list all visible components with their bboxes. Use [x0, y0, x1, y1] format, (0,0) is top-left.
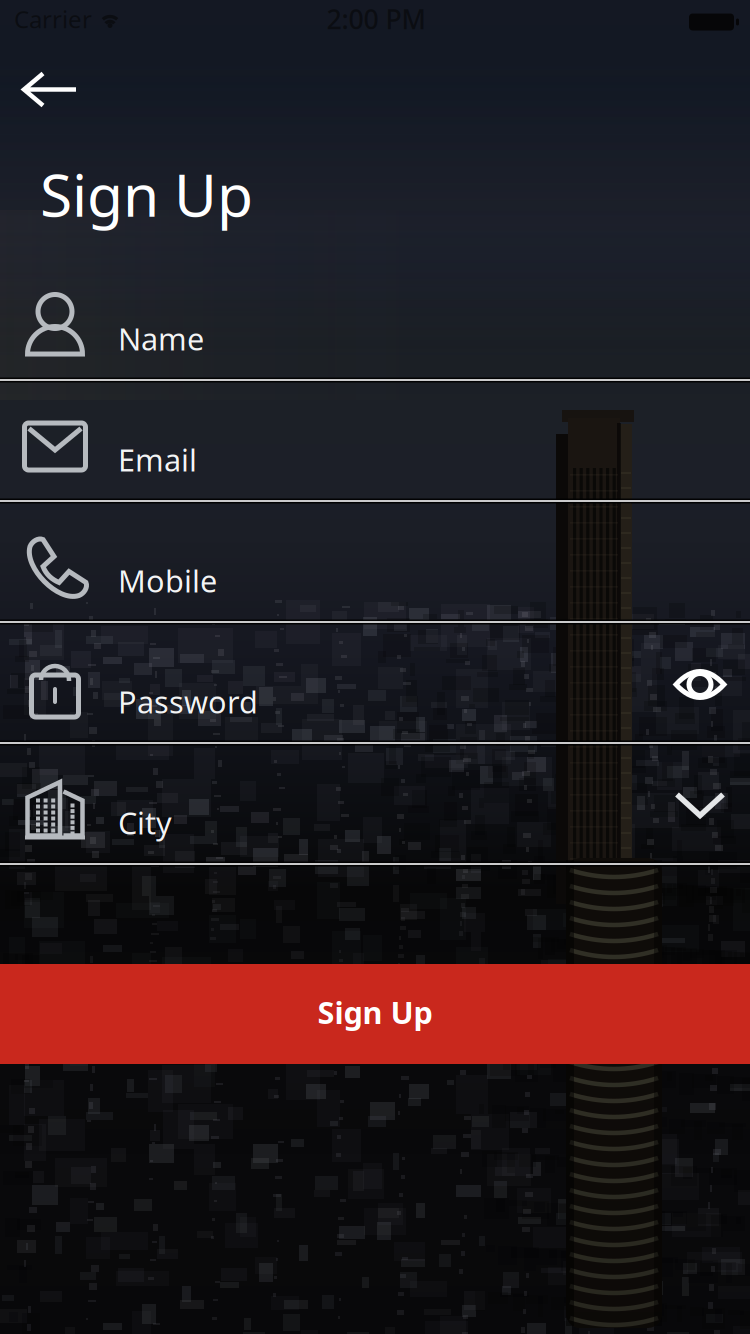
staticText: Name — [118, 318, 204, 359]
staticText: 2:00 PM — [326, 1, 425, 37]
button[interactable]: City — [0, 743, 750, 864]
button[interactable]: Back — [2, 50, 98, 130]
staticText: Sign Up — [40, 155, 253, 233]
button[interactable]: Mobile — [0, 501, 750, 622]
staticText: Email — [118, 439, 197, 480]
staticText: City — [118, 802, 172, 843]
staticText: Sign Up — [317, 992, 432, 1032]
staticText: Mobile — [118, 560, 217, 601]
button[interactable]: Name — [0, 259, 750, 380]
staticText: Password — [118, 681, 258, 722]
button[interactable]: Password — [0, 622, 750, 743]
button[interactable]: Email — [0, 380, 750, 501]
button[interactable]: Sign Up — [0, 964, 750, 1064]
staticText: Carrier — [14, 3, 92, 35]
